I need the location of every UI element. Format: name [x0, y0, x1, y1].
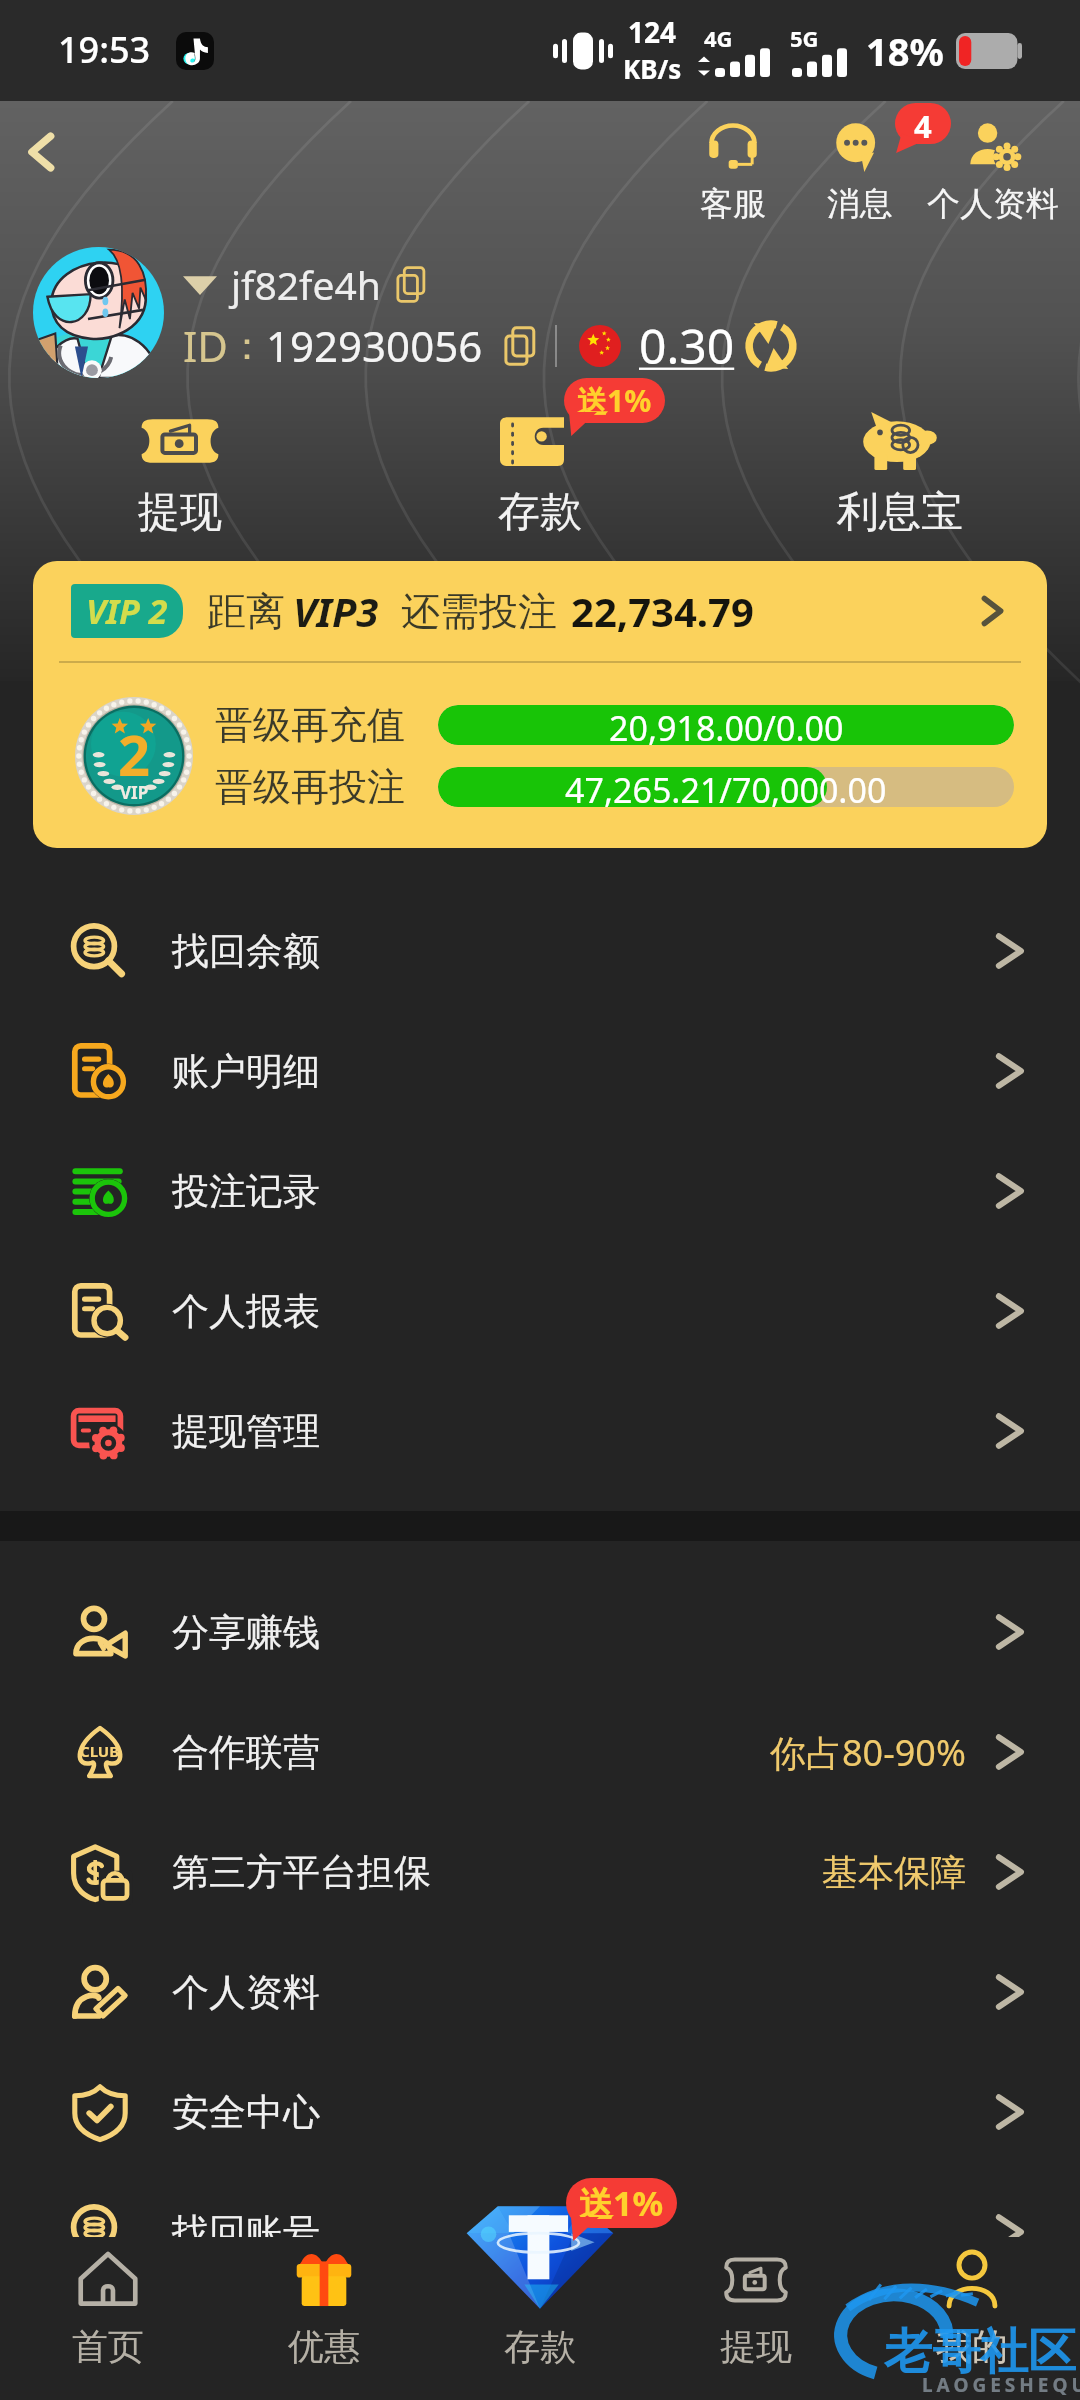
- button[interactable]: Back: [6, 116, 78, 188]
- staticText: 19:53: [58, 25, 151, 74]
- staticText: 送1%: [579, 2180, 664, 2226]
- button[interactable]: 安全中心: [0, 2052, 1080, 2172]
- staticText: 存款: [498, 486, 582, 539]
- staticText: 基本保障: [822, 1850, 966, 1895]
- staticText: 消息: [827, 183, 893, 225]
- button[interactable]: 找回余额: [0, 891, 1080, 1011]
- staticText: 20,918.00/0.00: [609, 705, 844, 745]
- staticText: 安全中心: [172, 2089, 320, 2136]
- button[interactable]: 提现管理: [0, 1371, 1080, 1491]
- staticText: 提现管理: [172, 1408, 320, 1455]
- button[interactable]: 个人资料: [0, 1932, 1080, 2052]
- button[interactable]: 提现: [648, 2249, 864, 2400]
- button[interactable]: 首页: [0, 2249, 216, 2400]
- button[interactable]: 优惠: [216, 2249, 432, 2400]
- staticText: 0.30: [639, 313, 735, 378]
- button[interactable]: 消息: [803, 119, 917, 225]
- staticText: 我的: [936, 2324, 1008, 2369]
- button[interactable]: 分享赚钱: [0, 1572, 1080, 1692]
- staticText: KB/s: [623, 51, 682, 86]
- button[interactable]: 账户明细: [0, 1011, 1080, 1131]
- staticText: 2: [118, 716, 151, 792]
- staticText: 18%: [866, 25, 944, 77]
- button[interactable]: 客服: [676, 119, 790, 225]
- staticText: 利息宝: [837, 486, 963, 539]
- staticText: 还需投注: [401, 587, 557, 636]
- button[interactable]: 我的: [864, 2249, 1080, 2400]
- staticText: VIP3: [293, 584, 379, 638]
- staticText: 个人资料: [172, 1969, 320, 2016]
- staticText: jf82fe4h: [231, 258, 381, 311]
- staticText: ID: [183, 317, 228, 374]
- staticText: 送1%: [577, 380, 652, 421]
- staticText: LAOGESHEQU: [922, 2372, 1080, 2398]
- button[interactable]: 找回账号: [0, 2172, 1080, 2292]
- staticText: 47,265.21/70,000.00: [565, 767, 887, 807]
- staticText: ：: [228, 322, 266, 370]
- staticText: 投注记录: [172, 1168, 320, 1215]
- staticText: 5G: [790, 23, 819, 53]
- staticText: 找回余额: [172, 928, 320, 975]
- staticText: 优惠: [288, 2324, 360, 2369]
- staticText: VIP: [120, 781, 149, 804]
- staticText: 个人报表: [172, 1288, 320, 1335]
- staticText: 提现: [720, 2324, 792, 2369]
- staticText: 192930056: [266, 317, 483, 374]
- button[interactable]: 提现: [0, 408, 360, 539]
- staticText: 提现: [138, 486, 222, 539]
- button[interactable]: CLUB: [0, 1692, 1080, 1812]
- staticText: 4G: [704, 23, 733, 53]
- button[interactable]: 个人报表: [0, 1251, 1080, 1371]
- staticText: 找回账号: [172, 2209, 320, 2256]
- staticText: 22,734.79: [571, 584, 754, 638]
- staticText: 客服: [700, 183, 766, 225]
- staticText: 4: [914, 105, 932, 147]
- button[interactable]: 个人资料: [911, 119, 1075, 225]
- staticText: 晋级再充值: [215, 701, 405, 749]
- staticText: VIP 2: [86, 588, 168, 634]
- button[interactable]: 利息宝: [720, 408, 1080, 539]
- button[interactable]: Deposit: [462, 2182, 618, 2310]
- staticText: 晋级再投注: [215, 763, 405, 811]
- button[interactable]: Deposit: [432, 2322, 648, 2400]
- staticText: 124: [628, 13, 677, 51]
- staticText: 账户明细: [172, 1048, 320, 1095]
- button[interactable]: 投注记录: [0, 1131, 1080, 1251]
- staticText: 老哥社区: [884, 2322, 1076, 2382]
- staticText: 你占80-90%: [770, 1728, 966, 1777]
- staticText: 首页: [72, 2324, 144, 2369]
- button[interactable]: 存款: [360, 408, 720, 539]
- button[interactable]: 第三方平台担保: [0, 1812, 1080, 1932]
- staticText: CLUB: [80, 1741, 120, 1761]
- staticText: 合作联营: [172, 1729, 320, 1776]
- staticText: 分享赚钱: [172, 1609, 320, 1656]
- staticText: 个人资料: [927, 183, 1059, 225]
- staticText: 第三方平台担保: [172, 1849, 431, 1896]
- staticText: 距离: [207, 587, 285, 636]
- staticText: 存款: [504, 2324, 576, 2369]
- button[interactable]: VIP 2: [33, 561, 1047, 848]
